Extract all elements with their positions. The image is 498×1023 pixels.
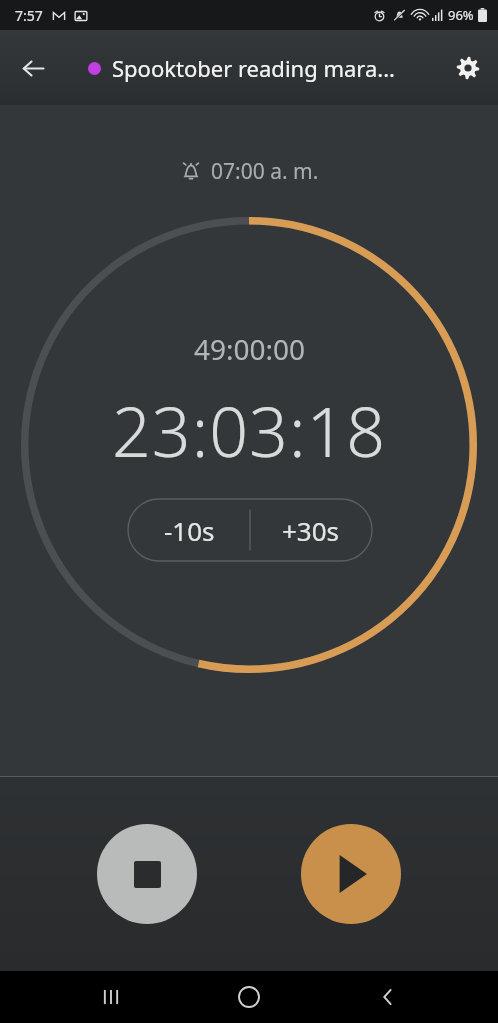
button[interactable]: Start	[301, 824, 401, 924]
button[interactable]: Home	[221, 971, 277, 1023]
button[interactable]: Recents	[83, 971, 139, 1023]
button[interactable]: Settings	[445, 45, 491, 91]
staticText: 23:03:18	[112, 384, 387, 477]
button[interactable]: Stop	[97, 824, 197, 924]
button[interactable]: Back	[360, 971, 416, 1023]
staticText: 07:00 a. m.	[211, 157, 319, 186]
staticText: 7:57	[15, 6, 43, 25]
button[interactable]: +30s	[250, 499, 372, 561]
staticText: Spooktober reading mara...	[112, 53, 396, 83]
button[interactable]: -10s	[128, 499, 250, 561]
staticText: 96%	[448, 6, 474, 24]
staticText: +30s	[282, 513, 340, 548]
staticText: 49:00:00	[194, 330, 306, 368]
staticText: -10s	[164, 513, 215, 548]
button[interactable]: Back	[9, 44, 57, 92]
